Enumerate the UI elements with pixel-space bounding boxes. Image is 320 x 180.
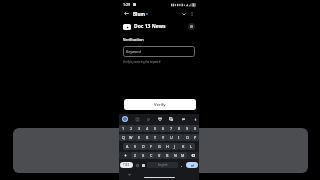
- staticText: 4: [146, 126, 149, 131]
- staticText: Doc 13 News: [134, 23, 166, 30]
- button[interactable]: Backspace: [187, 152, 199, 159]
- button[interactable]: Keyboard tool 5: [180, 116, 186, 122]
- button[interactable]: D: [139, 143, 147, 150]
- staticText: S: [134, 144, 137, 149]
- button[interactable]: 4: [143, 125, 151, 132]
- button[interactable]: N: [171, 152, 179, 159]
- button[interactable]: Google assistant: [122, 116, 128, 122]
- staticText: English: [158, 163, 168, 167]
- button[interactable]: U: [167, 134, 175, 141]
- staticText: 5: [154, 126, 157, 131]
- staticText: 1: [122, 126, 125, 131]
- button[interactable]: I: [175, 134, 183, 141]
- staticText: C: [150, 153, 153, 158]
- button[interactable]: R: [143, 134, 151, 141]
- staticText: T: [154, 135, 157, 140]
- staticText: E: [138, 135, 141, 140]
- staticText: A: [126, 144, 129, 149]
- button[interactable]: 0: [191, 125, 199, 132]
- button[interactable]: Keyboard tool 4: [168, 116, 174, 122]
- button[interactable]: A: [123, 143, 131, 150]
- button[interactable]: 9: [183, 125, 191, 132]
- staticText: I: [178, 135, 180, 140]
- button[interactable]: Hide keyboard: [126, 171, 132, 177]
- button[interactable]: S: [131, 143, 139, 150]
- button[interactable]: O: [183, 134, 191, 141]
- button[interactable]: Y: [159, 134, 167, 141]
- button[interactable]: 8: [175, 125, 183, 132]
- staticText: Blum: [133, 11, 145, 17]
- button[interactable]: 6: [159, 125, 167, 132]
- staticText: K: [182, 144, 185, 149]
- button[interactable]: G: [155, 143, 163, 150]
- staticText: B: [166, 153, 169, 158]
- button[interactable]: Keyboard tool 6: [192, 116, 198, 122]
- staticText: M: [181, 153, 185, 158]
- button[interactable]: 5: [151, 125, 159, 132]
- staticText: Verification: [123, 37, 144, 42]
- staticText: Verify by entering the keyword: [123, 60, 161, 64]
- button[interactable]: Period: [179, 161, 185, 169]
- staticText: H: [166, 144, 169, 149]
- button[interactable]: English: [147, 162, 178, 168]
- button[interactable]: More options: [188, 10, 196, 18]
- button[interactable]: M: [179, 152, 187, 159]
- staticText: P: [194, 135, 197, 140]
- button[interactable]: K: [179, 143, 187, 150]
- button[interactable]: ?123: [120, 162, 133, 168]
- button[interactable]: Keyboard tool 1: [134, 116, 140, 122]
- staticText: R: [146, 135, 149, 140]
- staticText: D: [142, 144, 145, 149]
- staticText: 9: [186, 126, 189, 131]
- staticText: U: [170, 135, 173, 140]
- button[interactable]: F: [147, 143, 155, 150]
- staticText: 3: [138, 126, 141, 131]
- button[interactable]: B: [163, 152, 171, 159]
- button[interactable]: Shift: [119, 152, 131, 159]
- button[interactable]: V: [155, 152, 163, 159]
- staticText: Q: [122, 135, 125, 140]
- button[interactable]: Z: [131, 152, 139, 159]
- staticText: 1:29: [123, 2, 131, 7]
- button[interactable]: Keyboard tool 3: [157, 116, 163, 122]
- button[interactable]: J: [171, 143, 179, 150]
- staticText: Z: [134, 153, 137, 158]
- button[interactable]: Q: [119, 134, 127, 141]
- button[interactable]: Sticker: [140, 161, 146, 169]
- button[interactable]: Expand: [179, 9, 188, 18]
- staticText: 6: [162, 126, 165, 131]
- staticText: Keyword: [126, 49, 141, 54]
- staticText: 7: [170, 126, 173, 131]
- button[interactable]: Keyboard tool 2: [145, 116, 151, 122]
- button[interactable]: 2: [127, 125, 135, 132]
- button[interactable]: Enter: [186, 162, 198, 168]
- button[interactable]: E: [135, 134, 143, 141]
- button[interactable]: T: [151, 134, 159, 141]
- button[interactable]: C: [147, 152, 155, 159]
- button[interactable]: 1: [119, 125, 127, 132]
- staticText: Y: [162, 135, 165, 140]
- staticText: N: [174, 153, 177, 158]
- button[interactable]: Emoji: [134, 161, 140, 169]
- button[interactable]: Back: [122, 9, 131, 18]
- button[interactable]: W: [127, 134, 135, 141]
- staticText: G: [158, 144, 161, 149]
- button[interactable]: 3: [135, 125, 143, 132]
- button[interactable]: P: [191, 134, 199, 141]
- button[interactable]: Verify: [124, 99, 196, 110]
- staticText: F: [150, 144, 152, 149]
- button[interactable]: 7: [167, 125, 175, 132]
- staticText: V: [158, 153, 161, 158]
- button[interactable]: Account: [188, 23, 195, 30]
- staticText: L: [190, 144, 192, 149]
- staticText: .: [181, 163, 183, 168]
- button[interactable]: Keyword: [123, 46, 195, 57]
- staticText: O: [186, 135, 189, 140]
- staticText: 2: [130, 126, 133, 131]
- staticText: ?123: [123, 163, 130, 167]
- button[interactable]: H: [163, 143, 171, 150]
- staticText: X: [142, 153, 145, 158]
- button[interactable]: L: [187, 143, 195, 150]
- staticText: 8: [178, 126, 181, 131]
- button[interactable]: X: [139, 152, 147, 159]
